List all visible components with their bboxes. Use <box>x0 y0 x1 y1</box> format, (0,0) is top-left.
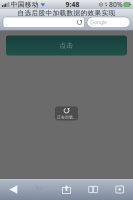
button[interactable] <box>3 17 84 27</box>
staticText: 自选后股中加载数据的效果实现 <box>17 9 115 17</box>
staticText: 中国移动 <box>11 0 39 9</box>
button[interactable]: Forward <box>27 179 53 200</box>
staticText: Google <box>90 19 107 26</box>
button[interactable]: Tabs <box>106 179 133 200</box>
staticText: 9:48 <box>65 0 79 9</box>
staticText: 80% <box>109 0 123 9</box>
button[interactable]: Google <box>87 17 130 27</box>
button[interactable]: Share <box>53 179 80 200</box>
button[interactable]: Bookmarks <box>80 179 106 200</box>
staticText: 点击 <box>59 41 73 50</box>
button[interactable]: Back <box>0 179 27 200</box>
staticText: 正在加载… <box>57 114 76 120</box>
